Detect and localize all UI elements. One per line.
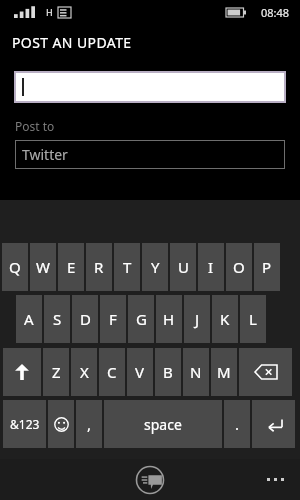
button[interactable]: E <box>58 243 84 291</box>
button[interactable]: R <box>86 243 112 291</box>
staticText: V <box>135 362 145 382</box>
staticText: POST AN UPDATE <box>12 33 132 52</box>
button[interactable]: B <box>155 348 181 396</box>
button[interactable]: S <box>44 295 70 343</box>
staticText: 08:48 <box>261 5 290 20</box>
button[interactable]: Emoji <box>48 400 74 448</box>
button[interactable]: &123 <box>3 400 46 448</box>
staticText: O <box>233 257 245 277</box>
button[interactable]: Enter <box>252 400 295 448</box>
button[interactable]: . <box>224 400 250 448</box>
staticText: H <box>163 309 175 329</box>
button[interactable]: Y <box>142 243 168 291</box>
button[interactable]: X <box>71 348 97 396</box>
button[interactable]: F <box>100 295 126 343</box>
staticText: X <box>80 362 89 382</box>
staticText: Twitter <box>22 145 68 164</box>
button[interactable]: L <box>240 295 266 343</box>
staticText: Post to <box>15 118 55 134</box>
staticText: R <box>94 257 104 277</box>
staticText: J <box>195 309 200 329</box>
staticText: I <box>208 257 214 277</box>
button[interactable]: Twitter <box>15 140 285 169</box>
button[interactable]: K <box>212 295 238 343</box>
button[interactable]: , <box>76 400 102 448</box>
button[interactable]: H <box>156 295 182 343</box>
button[interactable]: T <box>114 243 140 291</box>
staticText: Z <box>52 362 61 382</box>
staticText: P <box>262 257 272 277</box>
button[interactable]: P <box>254 243 280 291</box>
staticText: &123 <box>10 416 40 432</box>
staticText: K <box>220 309 230 329</box>
button[interactable]: O <box>226 243 252 291</box>
button[interactable]: More <box>261 474 290 485</box>
staticText: space <box>144 415 182 434</box>
staticText: T <box>123 257 132 277</box>
staticText: U <box>178 257 189 277</box>
button[interactable]: V <box>127 348 153 396</box>
staticText: Q <box>9 257 21 277</box>
staticText: C <box>107 362 117 382</box>
staticText: . <box>235 414 240 434</box>
staticText: L <box>249 309 257 329</box>
staticText: D <box>80 309 91 329</box>
button[interactable]: A <box>16 295 42 343</box>
button[interactable]: G <box>128 295 154 343</box>
button[interactable]: Shift <box>3 348 41 396</box>
staticText: Y <box>151 257 160 277</box>
staticText: H <box>46 6 53 18</box>
staticText: M <box>217 362 231 382</box>
staticText: G <box>136 309 147 329</box>
button[interactable]: Hide keyboard <box>133 463 167 497</box>
staticText: B <box>163 362 173 382</box>
button[interactable]: C <box>99 348 125 396</box>
staticText: , <box>87 414 92 434</box>
button[interactable]: Q <box>2 243 28 291</box>
button[interactable]: J <box>184 295 210 343</box>
button[interactable]: I <box>198 243 224 291</box>
button[interactable]: W <box>30 243 56 291</box>
button[interactable]: U <box>170 243 196 291</box>
button[interactable]: Backspace <box>239 348 292 396</box>
staticText: N <box>190 362 202 382</box>
button[interactable] <box>16 73 284 101</box>
staticText: A <box>24 309 34 329</box>
button[interactable]: D <box>72 295 98 343</box>
button[interactable]: N <box>183 348 209 396</box>
button[interactable]: M <box>211 348 237 396</box>
staticText: F <box>109 309 117 329</box>
staticText: W <box>36 257 50 277</box>
staticText: S <box>53 309 62 329</box>
button[interactable]: space <box>104 400 222 448</box>
button[interactable]: Z <box>43 348 69 396</box>
staticText: E <box>67 257 76 277</box>
